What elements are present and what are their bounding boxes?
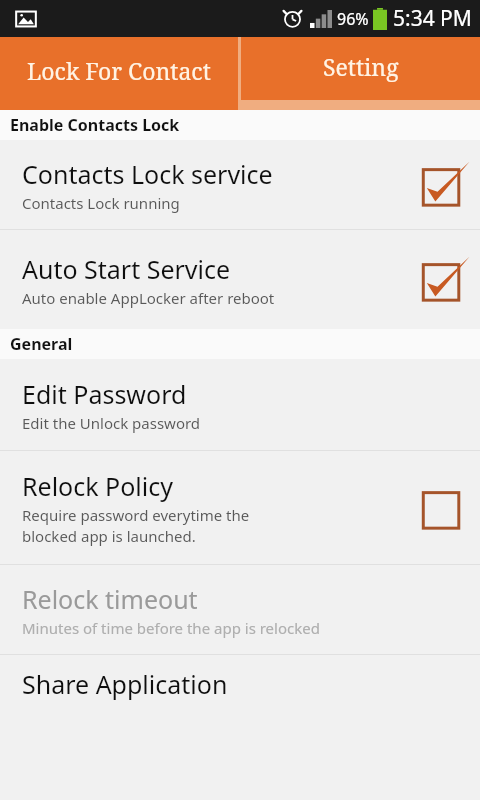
staticText: Enable Contacts Lock — [10, 114, 180, 136]
staticText: Minutes of time before the app is relock… — [22, 618, 320, 638]
staticText: Edit Password — [22, 377, 187, 411]
button[interactable]: Setting — [241, 37, 480, 110]
staticText: Auto enable AppLocker after reboot — [22, 288, 275, 308]
staticText: General — [10, 333, 73, 355]
button[interactable]: Share Application — [0, 655, 480, 713]
button[interactable]: Auto Start Service toggle — [404, 242, 480, 318]
staticText: Contacts Lock service — [22, 157, 273, 191]
staticText: Share Application — [22, 667, 228, 701]
button[interactable]: Auto Start Service — [0, 230, 480, 329]
button[interactable]: Contacts Lock service — [0, 140, 480, 229]
staticText: Relock Policy — [22, 469, 173, 503]
button[interactable]: Contacts Lock service toggle — [404, 147, 480, 223]
staticText: Auto Start Service — [22, 252, 231, 286]
staticText: Lock For Contact — [27, 55, 211, 86]
button[interactable]: Relock timeout — [0, 565, 480, 654]
staticText: Setting — [323, 51, 399, 82]
button[interactable]: Lock For Contact — [0, 37, 238, 110]
staticText: Require password everytime the blocked a… — [22, 505, 250, 547]
staticText: Edit the Unlock password — [22, 413, 201, 433]
staticText: 96% — [337, 8, 369, 30]
staticText: Contacts Lock running — [22, 193, 180, 213]
staticText: Relock timeout — [22, 582, 198, 616]
staticText: 5:34 PM — [393, 4, 472, 33]
button[interactable]: Relock Policy toggle — [404, 470, 480, 546]
button[interactable]: Edit Password — [0, 359, 480, 450]
button[interactable]: Relock Policy — [0, 451, 480, 564]
